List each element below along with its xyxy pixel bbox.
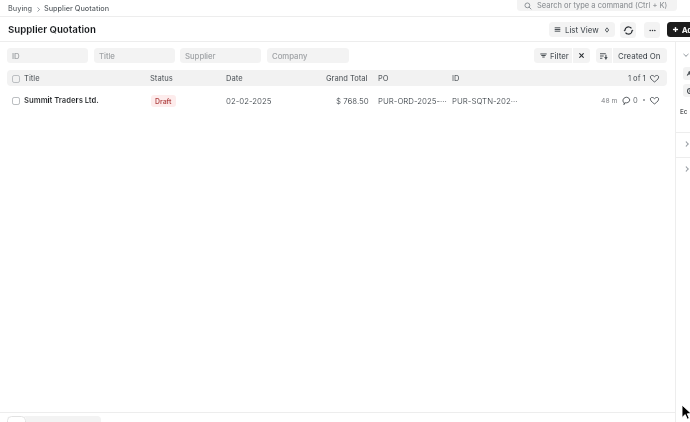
staticText: Title [24, 74, 40, 83]
button[interactable]: Title [94, 48, 175, 63]
button[interactable]: Expand section [682, 164, 690, 173]
staticText: Draft [155, 97, 172, 105]
button[interactable]: Expand section [682, 139, 690, 148]
button[interactable]: Company [267, 48, 349, 63]
button[interactable]: Select row [12, 75, 20, 83]
button[interactable]: Add Supplier Quotation [667, 22, 690, 37]
button[interactable]: Sort direction [596, 48, 612, 63]
button[interactable]: Attachments [683, 84, 690, 97]
staticText: PUR-ORD-2025-··· [378, 96, 447, 105]
staticText: Filter [550, 51, 569, 60]
button[interactable]: ID [7, 48, 88, 63]
staticText: Created On [618, 51, 661, 60]
staticText: Ec [680, 108, 688, 116]
staticText: 02-02-2025 [226, 96, 272, 105]
staticText: ID [452, 74, 460, 83]
staticText: 48 m [601, 96, 618, 104]
staticText: PO [378, 74, 389, 83]
button[interactable]: Buying [8, 4, 33, 13]
button[interactable]: Search or type a command (Ctrl + K) [517, 0, 677, 11]
button[interactable]: Select row [0, 86, 675, 114]
button[interactable]: Refresh [620, 22, 636, 38]
staticText: 0 [633, 96, 638, 105]
staticText: Status [150, 74, 173, 83]
button[interactable]: Assign to [683, 67, 690, 80]
button[interactable]: Collapse sidebar [681, 50, 690, 59]
staticText: Supplier [185, 51, 216, 60]
button[interactable]: Clear filters [573, 48, 590, 63]
staticText: Title [99, 51, 115, 60]
staticText: Add Supplier Quotation [682, 25, 690, 34]
button[interactable]: List View [549, 22, 615, 37]
button[interactable]: Supplier Quotation [44, 4, 110, 13]
staticText: Grand Total [326, 74, 368, 83]
button[interactable]: Supplier [180, 48, 261, 63]
staticText: ID [12, 51, 20, 60]
button[interactable]: Like [650, 74, 659, 83]
staticText: PUR-SQTN-202··· [452, 96, 518, 105]
button[interactable]: More options [644, 22, 660, 38]
staticText: 1 of 1 [628, 74, 646, 83]
staticText: Date [226, 74, 243, 83]
staticText: Search or type a command (Ctrl + K) [537, 1, 668, 10]
button[interactable]: Created On [613, 48, 666, 63]
staticText: $ 768.50 [336, 96, 369, 105]
button[interactable]: Select row [12, 97, 20, 105]
button[interactable]: Page size 20 [7, 416, 26, 422]
button[interactable]: Filter [534, 48, 574, 63]
staticText: Company [272, 51, 308, 60]
staticText: List View [565, 25, 599, 34]
staticText: Summit Traders Ltd. [24, 96, 99, 105]
staticText: Supplier Quotation [8, 24, 96, 36]
